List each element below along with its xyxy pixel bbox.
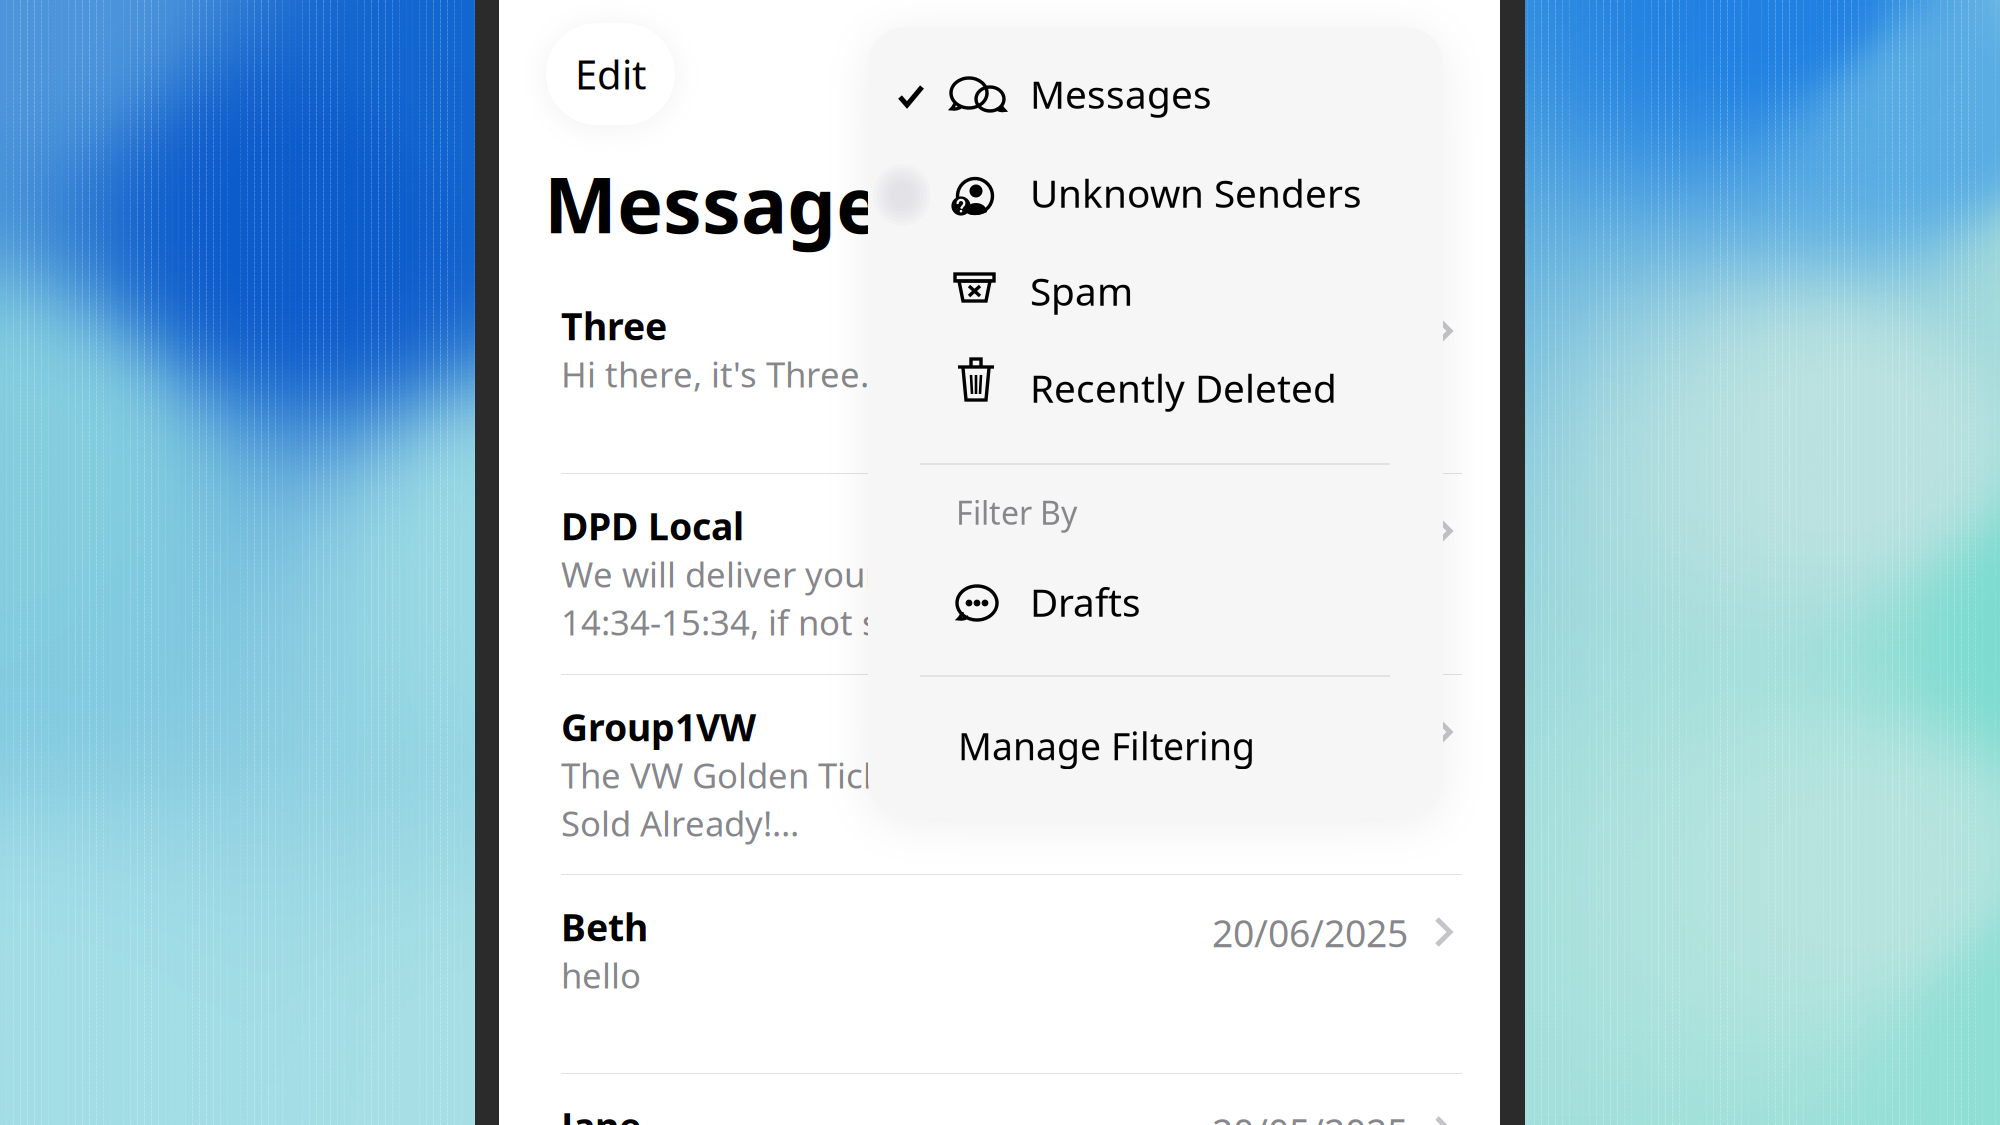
button[interactable]: Edit	[546, 23, 675, 125]
staticText: Beth	[561, 902, 648, 952]
staticText: 14:34-15:34, if not sooner.	[561, 599, 980, 645]
staticText: Filter By	[956, 491, 1077, 533]
staticText: Sold Already!...	[561, 800, 799, 846]
staticText: 20/06/2025	[1212, 908, 1408, 958]
staticText: Manage Filtering	[958, 721, 1255, 771]
staticText: Messages	[1030, 68, 1212, 119]
staticText: DPD Local	[561, 501, 744, 551]
button[interactable]: Drafts	[868, 27, 1443, 89]
staticText: The VW Golden Ticket Has Been	[561, 752, 1079, 798]
button[interactable]: Spam	[868, 27, 1443, 89]
staticText: Three	[561, 301, 667, 351]
button[interactable]: Group1VW	[499, 675, 1500, 875]
staticText: Hi there, it's Three.	[561, 351, 869, 397]
staticText: Recently Deleted	[1030, 362, 1337, 413]
button[interactable]: Manage Filtering	[958, 721, 1255, 771]
staticText: Edit	[575, 47, 646, 100]
staticText: 20/05/2025	[1212, 1107, 1408, 1125]
staticText: Unknown Senders	[1030, 167, 1362, 218]
staticText: Messages	[544, 152, 921, 255]
staticText: Jane	[561, 1101, 641, 1125]
staticText: We will deliver your parcel between	[561, 551, 1139, 597]
staticText: Drafts	[1030, 576, 1141, 627]
button[interactable]: Recently Deleted	[868, 27, 1443, 89]
button[interactable]: DPD Local	[499, 474, 1500, 675]
staticText: Spam	[1030, 265, 1133, 316]
button[interactable]: Beth	[499, 875, 1500, 1074]
button[interactable]: Jane	[499, 1074, 1500, 1125]
button[interactable]: Unknown Senders	[868, 27, 1443, 89]
staticText: Group1VW	[561, 702, 756, 752]
staticText: hello	[561, 952, 641, 998]
button[interactable]: Messages	[868, 27, 1443, 89]
button[interactable]: Three	[499, 274, 1500, 474]
